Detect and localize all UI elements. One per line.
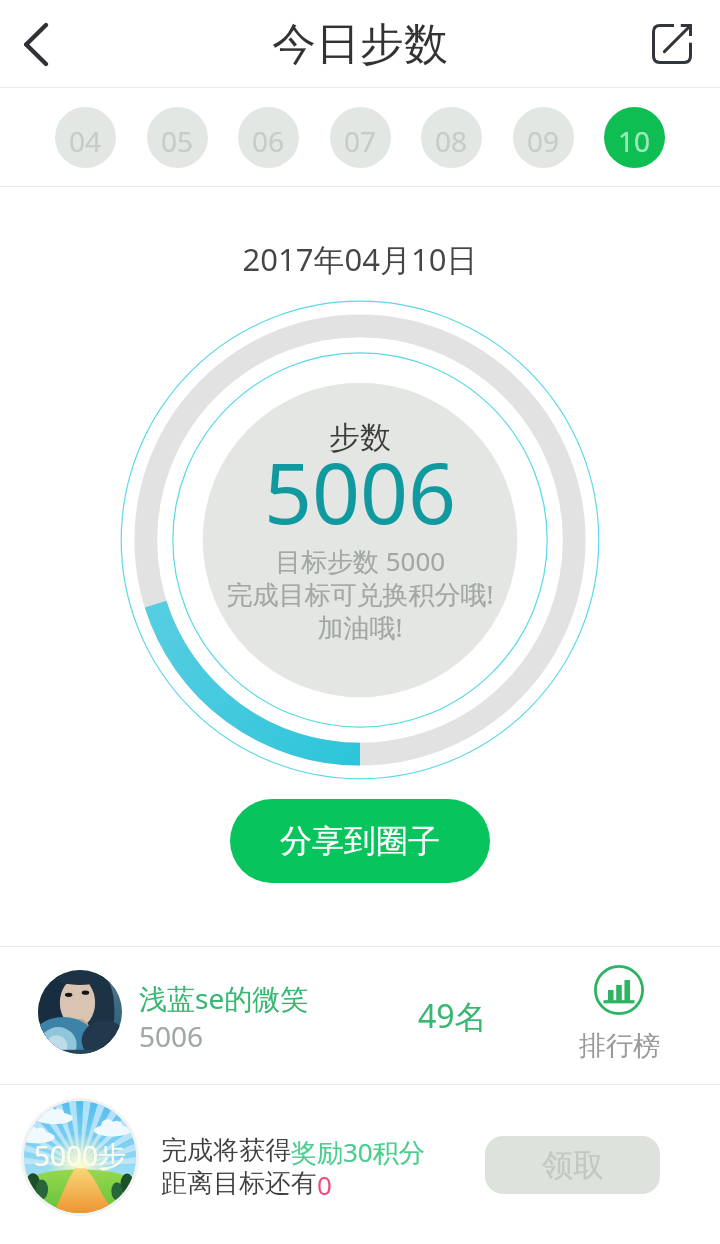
button[interactable]: 09 (513, 107, 574, 168)
button[interactable]: 浅蓝se的微笑 (0, 947, 720, 1084)
button[interactable]: 分享到圈子 (230, 799, 490, 883)
staticText: 浅蓝se的微笑 (139, 979, 309, 1017)
staticText: 今日步数 (272, 17, 448, 72)
button[interactable]: 10 (604, 107, 665, 168)
staticText: 08 (435, 122, 468, 160)
staticText: 排行榜 (579, 1029, 660, 1063)
staticText: 0 (317, 1167, 332, 1202)
staticText: 2017年04月10日 (0, 238, 720, 280)
staticText: 5006 (120, 434, 600, 548)
button[interactable]: 07 (330, 107, 391, 168)
staticText: 07 (344, 122, 377, 160)
staticText: 步数 (120, 418, 600, 457)
staticText: 分享到圈子 (280, 821, 440, 861)
staticText: 09 (527, 122, 560, 160)
button[interactable]: 05 (147, 107, 208, 168)
staticText: 06 (252, 122, 285, 160)
staticText: 5000步 (34, 1136, 127, 1174)
button[interactable]: 08 (421, 107, 482, 168)
staticText: 距离目标还有 (161, 1167, 317, 1200)
staticText: 10 (618, 122, 651, 160)
staticText: 49名 (418, 994, 487, 1038)
staticText: 04 (69, 122, 102, 160)
button[interactable]: 06 (238, 107, 299, 168)
staticText: 目标步数 5000 完成目标可兑换积分哦! 加油哦! (120, 543, 600, 645)
button[interactable]: 排行榜 (570, 965, 668, 1063)
staticText: 05 (161, 122, 194, 160)
staticText: 完成将获得 (161, 1134, 291, 1167)
button[interactable]: 04 (55, 107, 116, 168)
button[interactable]: 领取 (485, 1136, 660, 1194)
staticText: 领取 (542, 1146, 604, 1185)
staticText: 5006 (139, 1017, 204, 1055)
button[interactable]: Share (627, 0, 717, 88)
staticText: 奖励30积分 (291, 1134, 425, 1170)
button[interactable]: Back (0, 0, 70, 88)
